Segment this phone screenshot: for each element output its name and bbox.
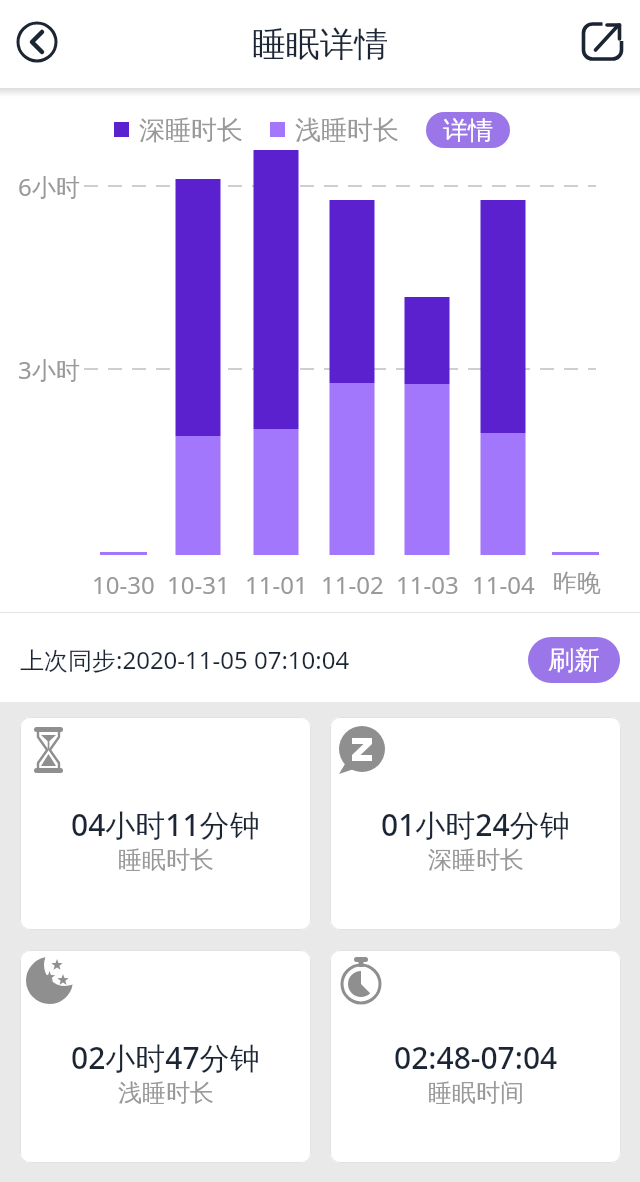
staticText: 深睡时长 [428, 845, 524, 875]
button[interactable] [582, 20, 624, 62]
button[interactable] [20, 950, 311, 1163]
staticText: 01小时24分钟 [381, 804, 570, 844]
staticText: 睡眠时间 [428, 1078, 524, 1108]
button[interactable]: 刷新 [528, 637, 620, 683]
staticText: 浅睡时长 [295, 114, 399, 147]
button[interactable]: 详情 [426, 112, 510, 148]
staticText: 睡眠时长 [118, 845, 214, 875]
button[interactable] [330, 717, 621, 930]
staticText: 10-31 [167, 568, 230, 598]
button[interactable] [20, 717, 311, 930]
staticText: 04小时11分钟 [71, 804, 260, 844]
staticText: 3小时 [18, 353, 80, 386]
staticText: 02小时47分钟 [71, 1037, 260, 1077]
button[interactable] [330, 950, 621, 1163]
staticText: 上次同步:2020-11-05 07:10:04 [20, 643, 350, 676]
staticText: 10-30 [92, 568, 155, 598]
staticText: 11-03 [396, 568, 459, 598]
staticText: 11-04 [472, 568, 535, 598]
staticText: 浅睡时长 [118, 1078, 214, 1108]
button[interactable] [15, 20, 59, 64]
staticText: 6小时 [18, 170, 80, 203]
staticText: 详情 [443, 115, 493, 146]
staticText: 02:48-07:04 [394, 1037, 558, 1077]
staticText: 11-02 [321, 568, 384, 598]
staticText: 睡眠详情 [252, 23, 388, 66]
staticText: 深睡时长 [139, 114, 243, 147]
staticText: 11-01 [245, 568, 308, 598]
staticText: 昨晚 [553, 568, 601, 598]
staticText: 刷新 [548, 644, 600, 677]
